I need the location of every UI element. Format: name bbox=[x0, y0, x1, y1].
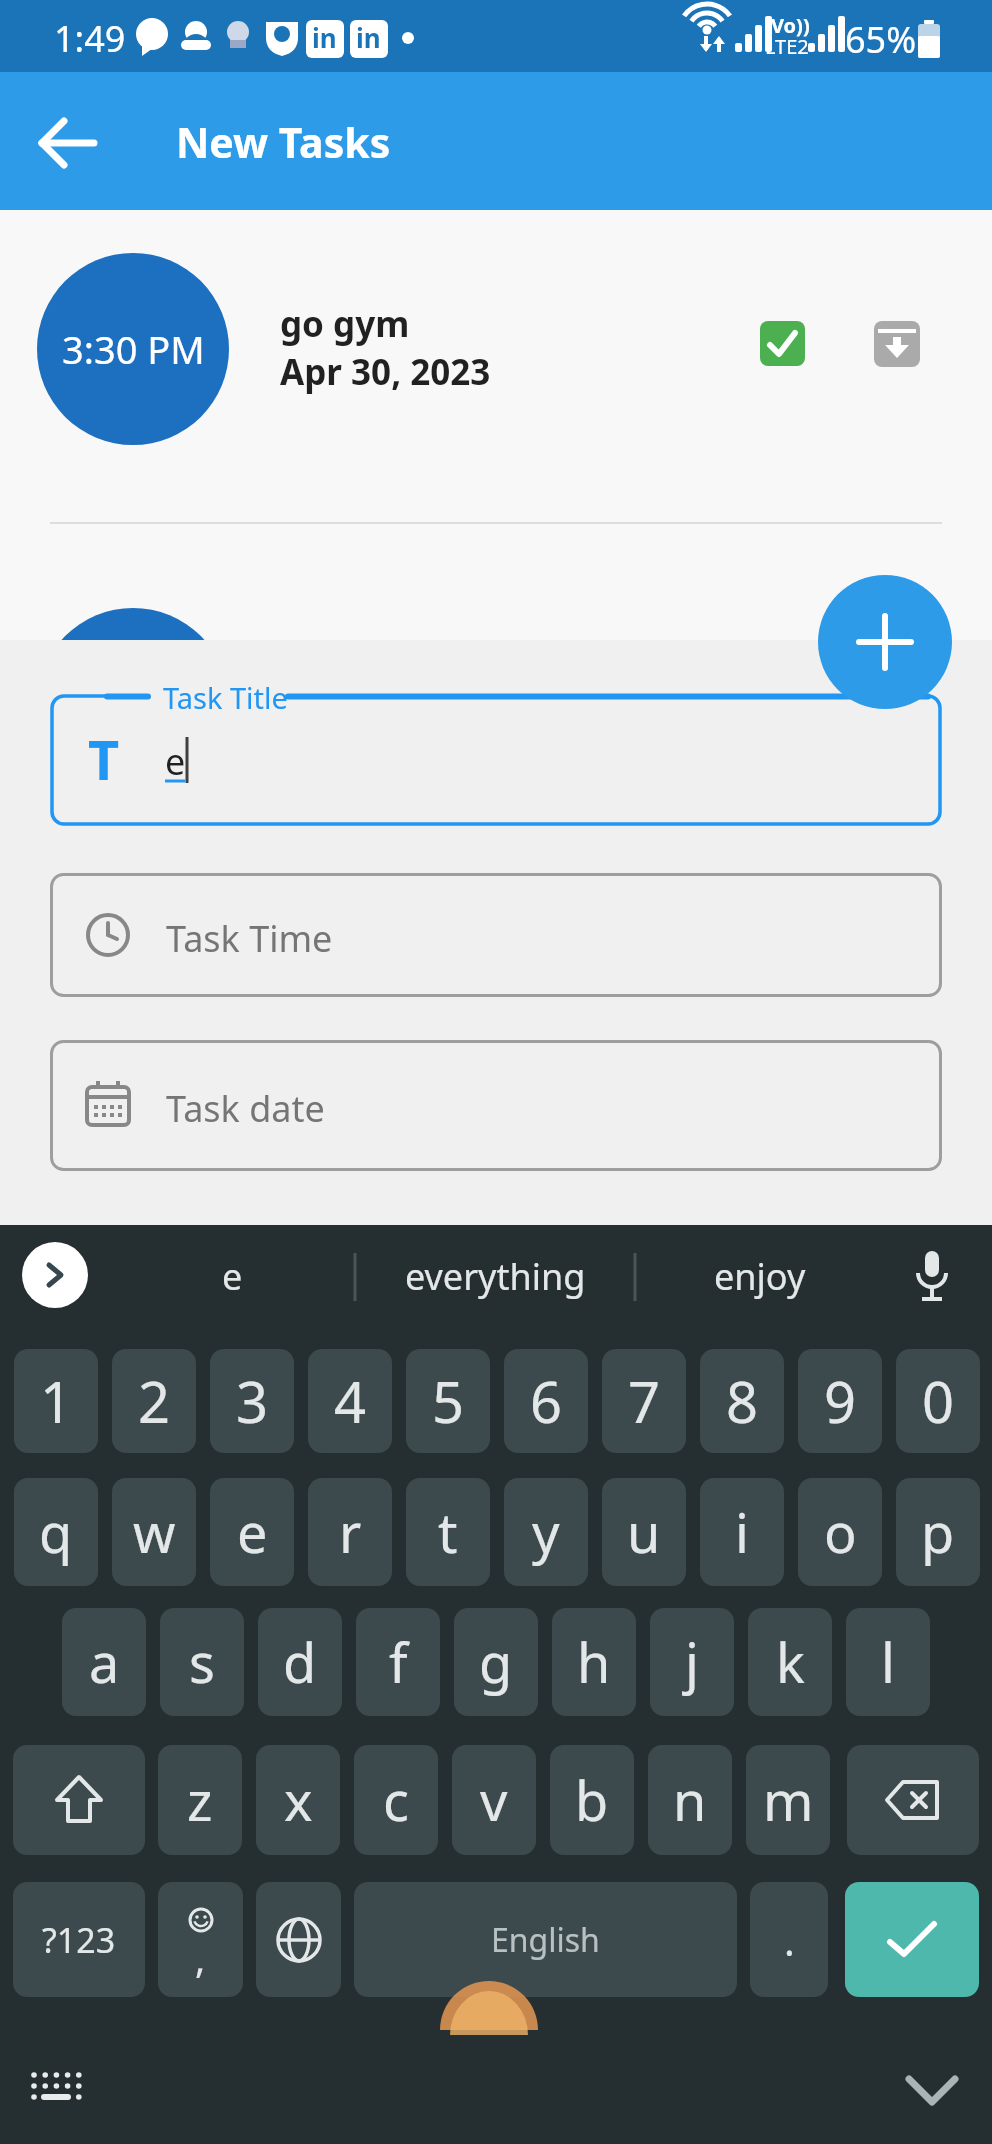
staticText: l bbox=[881, 1625, 895, 1699]
staticText: 1:49 bbox=[54, 14, 126, 63]
button[interactable] bbox=[818, 575, 952, 709]
button[interactable]: r bbox=[308, 1478, 392, 1586]
staticText: ?123 bbox=[42, 1917, 116, 1963]
button[interactable]: c bbox=[354, 1745, 438, 1855]
staticText: in bbox=[356, 20, 381, 55]
staticText: d bbox=[283, 1625, 317, 1699]
staticText: b bbox=[575, 1763, 609, 1837]
button[interactable]: . bbox=[750, 1882, 828, 1997]
button[interactable] bbox=[28, 107, 108, 179]
button[interactable] bbox=[845, 1882, 979, 1997]
staticText: e bbox=[237, 1495, 268, 1569]
button[interactable] bbox=[874, 321, 920, 367]
staticText: Task Title bbox=[163, 678, 288, 717]
button[interactable]: 1 bbox=[14, 1349, 98, 1453]
button[interactable]: 3:30 PM bbox=[37, 253, 229, 445]
button[interactable]: w bbox=[112, 1478, 196, 1586]
button[interactable]: T bbox=[50, 694, 942, 826]
button[interactable]: f bbox=[356, 1608, 440, 1716]
staticText: everything bbox=[405, 1252, 586, 1301]
button[interactable]: n bbox=[648, 1745, 732, 1855]
staticText: 65% bbox=[845, 15, 917, 64]
button[interactable]: q bbox=[14, 1478, 98, 1586]
staticText: u bbox=[627, 1495, 661, 1569]
staticText: New Tasks bbox=[176, 114, 391, 170]
button[interactable]: v bbox=[452, 1745, 536, 1855]
button[interactable] bbox=[256, 1882, 341, 1997]
button[interactable]: b bbox=[550, 1745, 634, 1855]
button[interactable] bbox=[760, 321, 805, 366]
button[interactable]: a bbox=[62, 1608, 146, 1716]
staticText: r bbox=[339, 1495, 362, 1569]
button[interactable] bbox=[898, 2063, 966, 2119]
staticText: g bbox=[479, 1625, 513, 1699]
button[interactable]: 4 bbox=[308, 1349, 392, 1453]
button[interactable]: y bbox=[504, 1478, 588, 1586]
button[interactable]: 3 bbox=[210, 1349, 294, 1453]
button[interactable]: enjoy bbox=[635, 1225, 885, 1328]
button[interactable]: d bbox=[258, 1608, 342, 1716]
staticText: 9 bbox=[824, 1363, 857, 1439]
staticText: q bbox=[39, 1495, 73, 1569]
button[interactable]: 8 bbox=[700, 1349, 784, 1453]
staticText: w bbox=[133, 1495, 176, 1569]
staticText: e bbox=[165, 737, 186, 786]
staticText: a bbox=[89, 1625, 120, 1699]
staticText: Task date bbox=[166, 1084, 325, 1133]
button[interactable]: x bbox=[256, 1745, 340, 1855]
button[interactable]: 2 bbox=[112, 1349, 196, 1453]
button[interactable]: u bbox=[602, 1478, 686, 1586]
button[interactable]: s bbox=[160, 1608, 244, 1716]
staticText: , bbox=[195, 1932, 206, 1984]
staticText: 0 bbox=[922, 1363, 955, 1439]
staticText: in bbox=[312, 20, 337, 55]
staticText: Apr 30, 2023 bbox=[280, 348, 491, 396]
staticText: h bbox=[577, 1625, 611, 1699]
staticText: 5 bbox=[432, 1363, 465, 1439]
button[interactable]: Task Time bbox=[50, 873, 942, 997]
button[interactable]: ?123 bbox=[13, 1882, 145, 1997]
staticText: s bbox=[189, 1625, 215, 1699]
button[interactable]: 9 bbox=[798, 1349, 882, 1453]
button[interactable]: j bbox=[650, 1608, 734, 1716]
button[interactable]: m bbox=[746, 1745, 830, 1855]
button[interactable] bbox=[22, 1242, 88, 1308]
button[interactable]: l bbox=[846, 1608, 930, 1716]
button[interactable]: 5 bbox=[406, 1349, 490, 1453]
button[interactable]: e bbox=[210, 1478, 294, 1586]
button[interactable]: k bbox=[748, 1608, 832, 1716]
button[interactable]: 7 bbox=[602, 1349, 686, 1453]
staticText: k bbox=[776, 1625, 805, 1699]
button[interactable]: Task date bbox=[50, 1040, 942, 1171]
staticText: English bbox=[491, 1918, 600, 1962]
button[interactable]: , bbox=[158, 1882, 243, 1997]
button[interactable]: z bbox=[158, 1745, 242, 1855]
button[interactable]: p bbox=[896, 1478, 980, 1586]
staticText: 4 bbox=[334, 1363, 367, 1439]
button[interactable] bbox=[847, 1745, 979, 1855]
staticText: t bbox=[438, 1495, 458, 1569]
staticText: 1 bbox=[40, 1363, 73, 1439]
staticText: f bbox=[389, 1625, 408, 1699]
button[interactable] bbox=[900, 1245, 964, 1309]
button[interactable]: h bbox=[552, 1608, 636, 1716]
button[interactable]: g bbox=[454, 1608, 538, 1716]
button[interactable]: o bbox=[798, 1478, 882, 1586]
staticText: 8 bbox=[726, 1363, 759, 1439]
staticText: n bbox=[673, 1763, 707, 1837]
button[interactable] bbox=[26, 2065, 88, 2109]
staticText: LTE2 bbox=[765, 33, 809, 60]
button[interactable]: e bbox=[110, 1225, 355, 1328]
staticText: y bbox=[532, 1495, 560, 1569]
button[interactable]: 0 bbox=[896, 1349, 980, 1453]
button[interactable]: everything bbox=[355, 1225, 635, 1328]
button[interactable]: English bbox=[354, 1882, 737, 1997]
staticText: 7 bbox=[628, 1363, 661, 1439]
staticText: 3 bbox=[236, 1363, 269, 1439]
button[interactable]: 6 bbox=[504, 1349, 588, 1453]
button[interactable] bbox=[13, 1745, 145, 1855]
staticText: . bbox=[784, 1913, 795, 1967]
button[interactable]: t bbox=[406, 1478, 490, 1586]
staticText: Task Time bbox=[166, 914, 333, 963]
button[interactable]: i bbox=[700, 1478, 784, 1586]
